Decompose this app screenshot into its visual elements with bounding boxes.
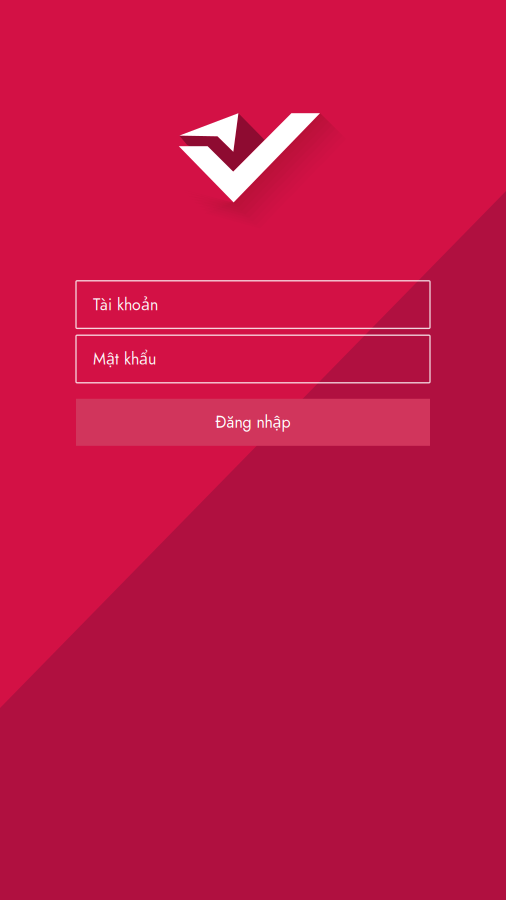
staticText: Tài khoản [93,293,158,316]
button[interactable]: Đăng nhập [76,399,430,446]
staticText: Đăng nhập [215,411,290,434]
button[interactable]: Tài khoản [76,281,430,328]
staticText: Mật khẩu [93,347,156,370]
button[interactable]: Mật khẩu [76,335,430,383]
